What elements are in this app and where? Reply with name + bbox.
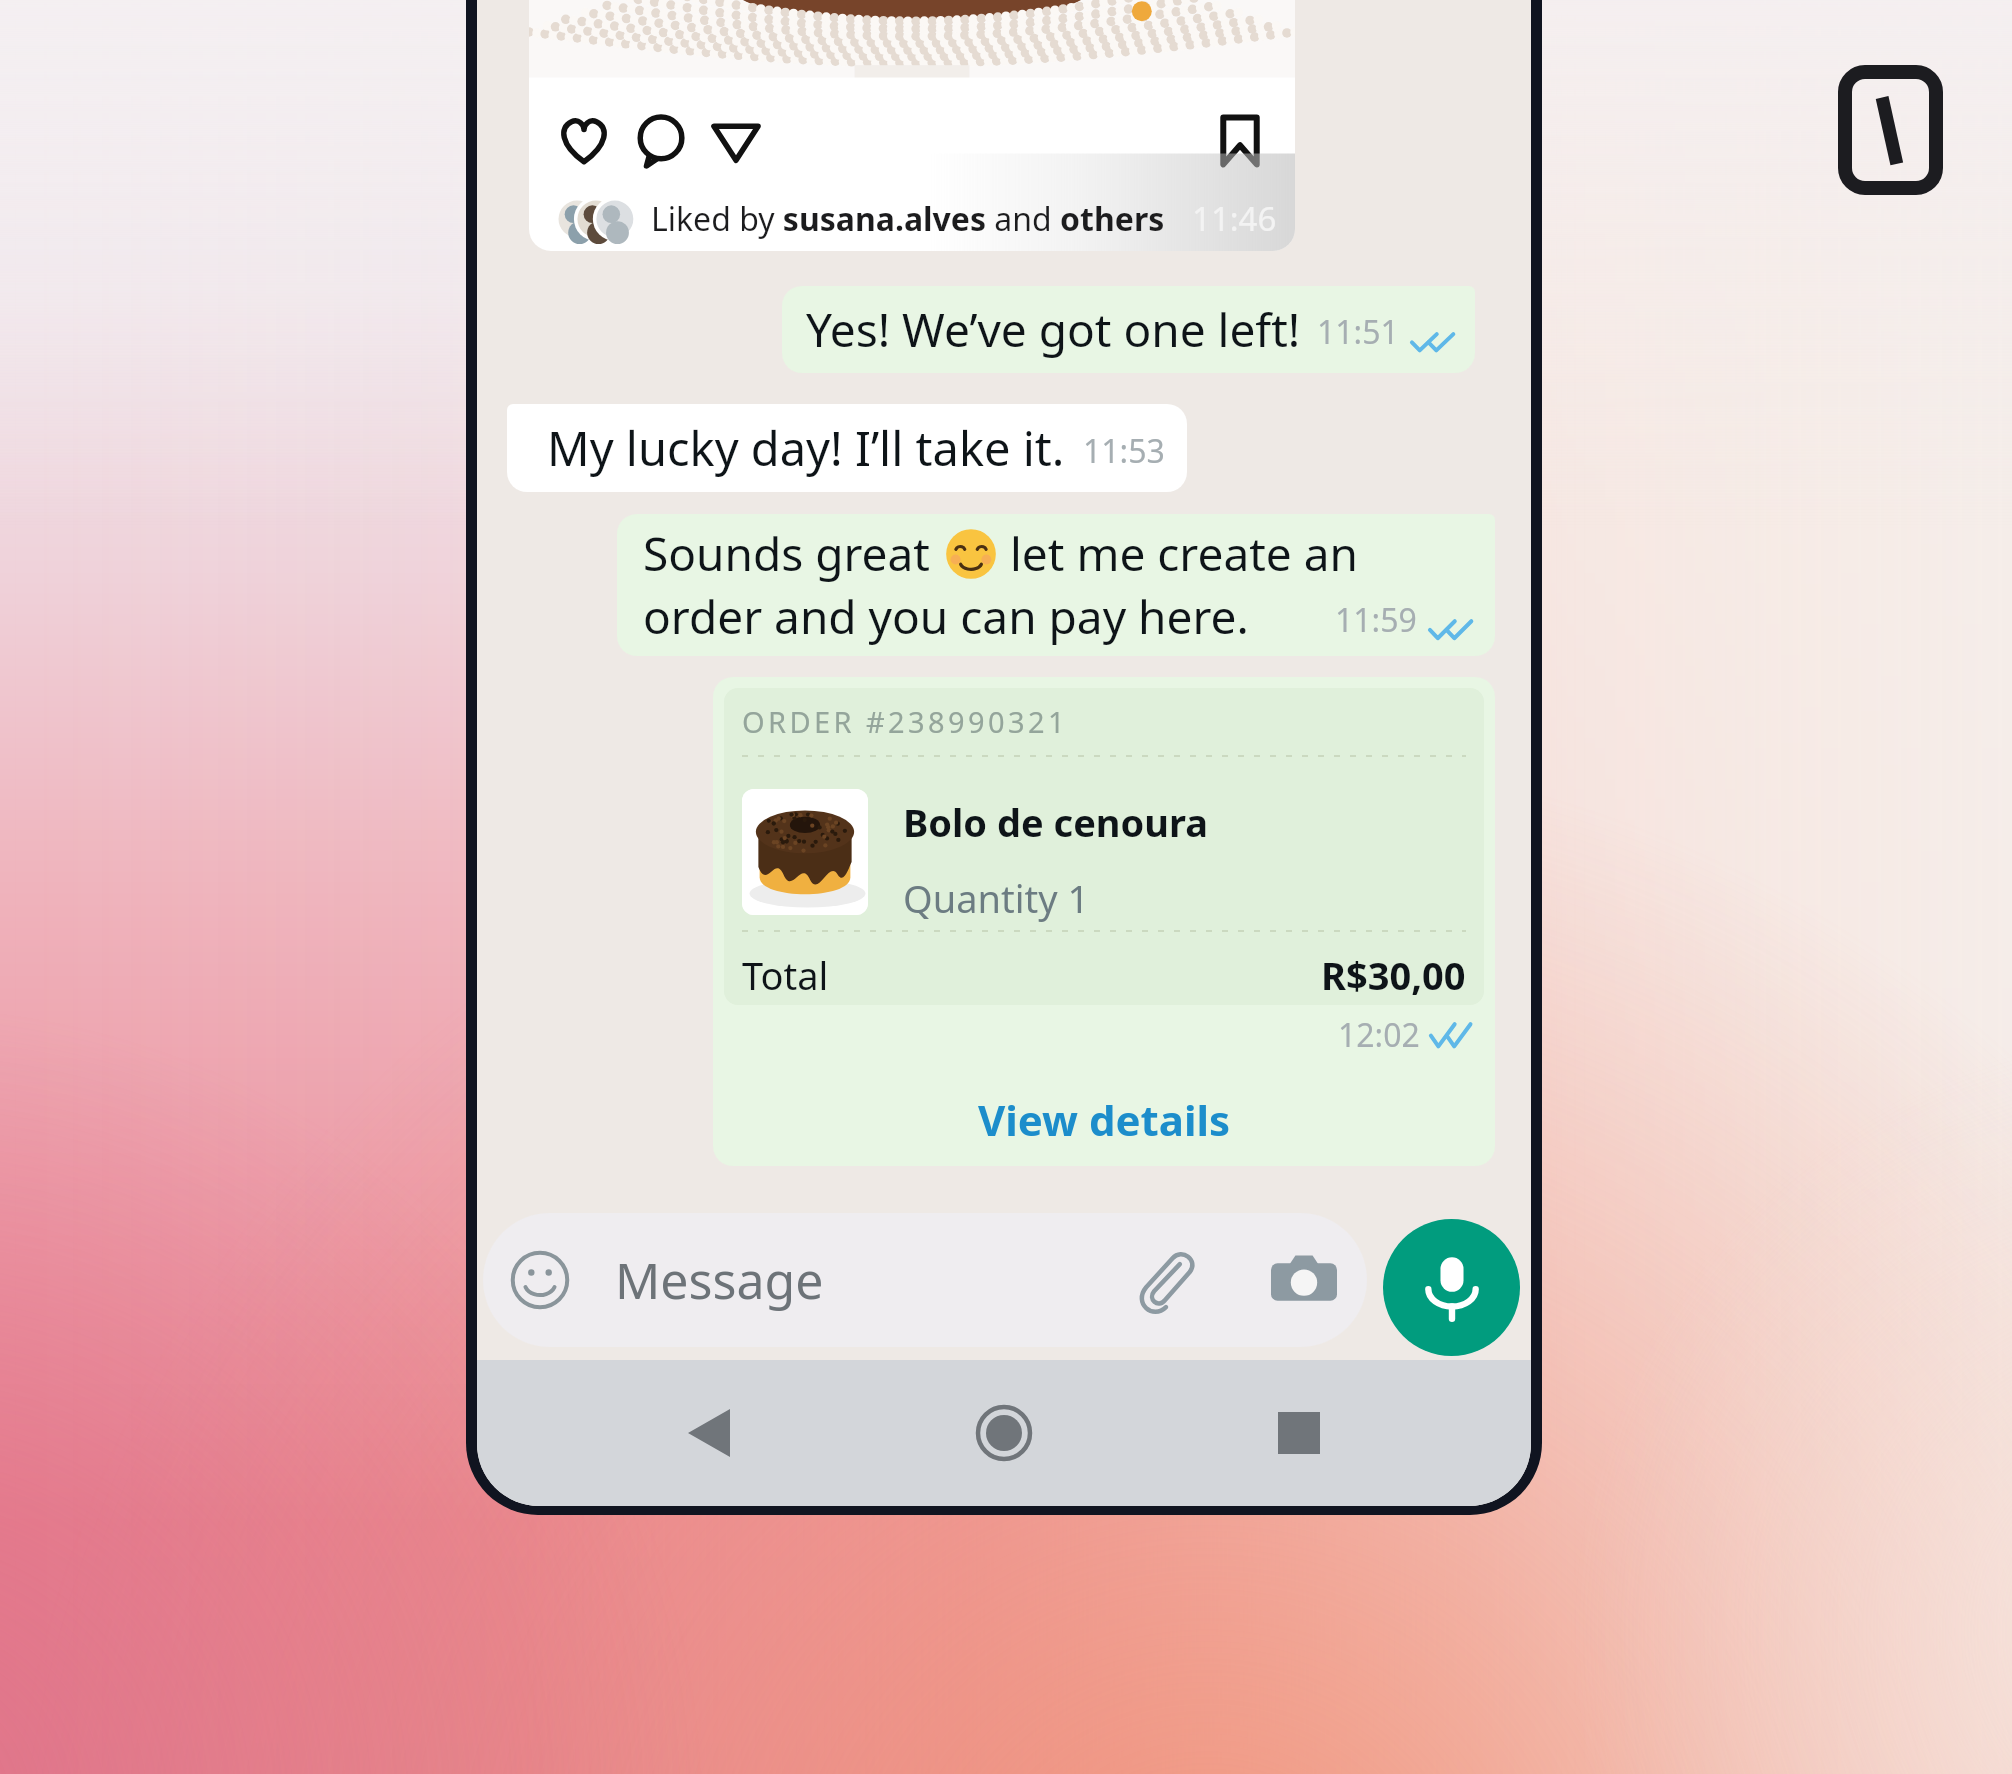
staticText: Yes! We’ve got one left! — [806, 298, 1301, 361]
button[interactable]: Sounds great — [617, 514, 1495, 656]
staticText: ORDER #238990321 — [742, 702, 1068, 741]
button[interactable]: View details — [724, 1057, 1484, 1155]
staticText: 11:59 — [1335, 598, 1417, 642]
staticText: Liked by susana.alves and others — [651, 197, 1165, 241]
staticText: let me create an — [1010, 522, 1358, 585]
button[interactable]: Attach — [1167, 1247, 1233, 1313]
staticText: R$30,00 — [1321, 949, 1466, 1001]
button[interactable]: My lucky day! I’ll take it. — [507, 404, 1187, 492]
staticText: Message — [615, 1246, 824, 1314]
button[interactable]: Back — [649, 1360, 769, 1506]
button[interactable]: Save — [1211, 112, 1269, 170]
button[interactable]: Camera — [1271, 1247, 1337, 1313]
button[interactable]: App logo — [1838, 65, 1943, 195]
button[interactable]: Recent apps — [1239, 1360, 1359, 1506]
staticText: Quantity 1 — [903, 872, 1090, 924]
button[interactable]: Record voice message — [1383, 1219, 1520, 1356]
button[interactable]: Comment — [631, 112, 689, 170]
button[interactable]: Yes! We’ve got one left! — [782, 286, 1475, 373]
staticText: 11:46 — [1192, 196, 1277, 241]
button[interactable]: Home — [944, 1360, 1064, 1506]
button[interactable]: Like — [555, 112, 613, 170]
button[interactable]: ORDER #238990321 — [713, 677, 1495, 1166]
staticText: 11:51 — [1317, 310, 1399, 354]
staticText: Bolo de cenoura — [903, 796, 1208, 848]
staticText: My lucky day! I’ll take it. — [547, 416, 1065, 480]
staticText: Total — [742, 949, 829, 1001]
staticText: Sounds great — [643, 522, 930, 585]
staticText: order and you can pay here. — [643, 585, 1249, 648]
staticText: 11:53 — [1083, 429, 1165, 473]
button[interactable]: Message — [483, 1213, 1367, 1347]
staticText: 12:02 — [1338, 1013, 1420, 1057]
staticText: View details — [978, 1091, 1231, 1148]
button[interactable]: Like — [529, 0, 1295, 251]
button[interactable]: Share post — [707, 112, 765, 170]
